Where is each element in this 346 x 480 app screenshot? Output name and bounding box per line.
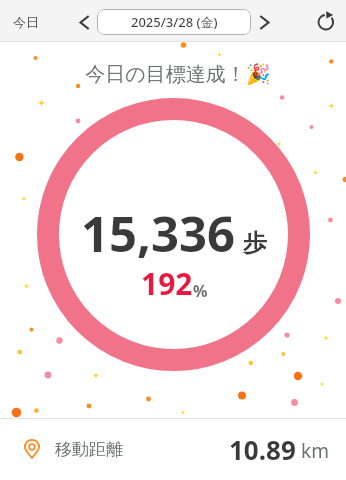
- staticText: 2025/3/28 (金): [131, 13, 218, 31]
- staticText: km: [301, 438, 329, 464]
- staticText: 192: [141, 263, 193, 304]
- staticText: 今日の目標達成！🎉: [85, 62, 271, 87]
- button[interactable]: 前の日: [71, 9, 97, 35]
- button[interactable]: 2025/3/28 (金): [97, 9, 251, 35]
- staticText: 歩: [243, 228, 267, 258]
- staticText: 今日: [13, 14, 39, 30]
- button[interactable]: 更新: [313, 8, 341, 36]
- staticText: %: [193, 280, 208, 302]
- button[interactable]: 今日: [13, 14, 39, 30]
- button[interactable]: 次の日: [251, 9, 277, 35]
- staticText: 15,336: [81, 200, 236, 267]
- button[interactable]: 移動距離: [0, 419, 346, 480]
- staticText: 10.89: [229, 432, 296, 467]
- staticText: 移動距離: [55, 439, 123, 460]
